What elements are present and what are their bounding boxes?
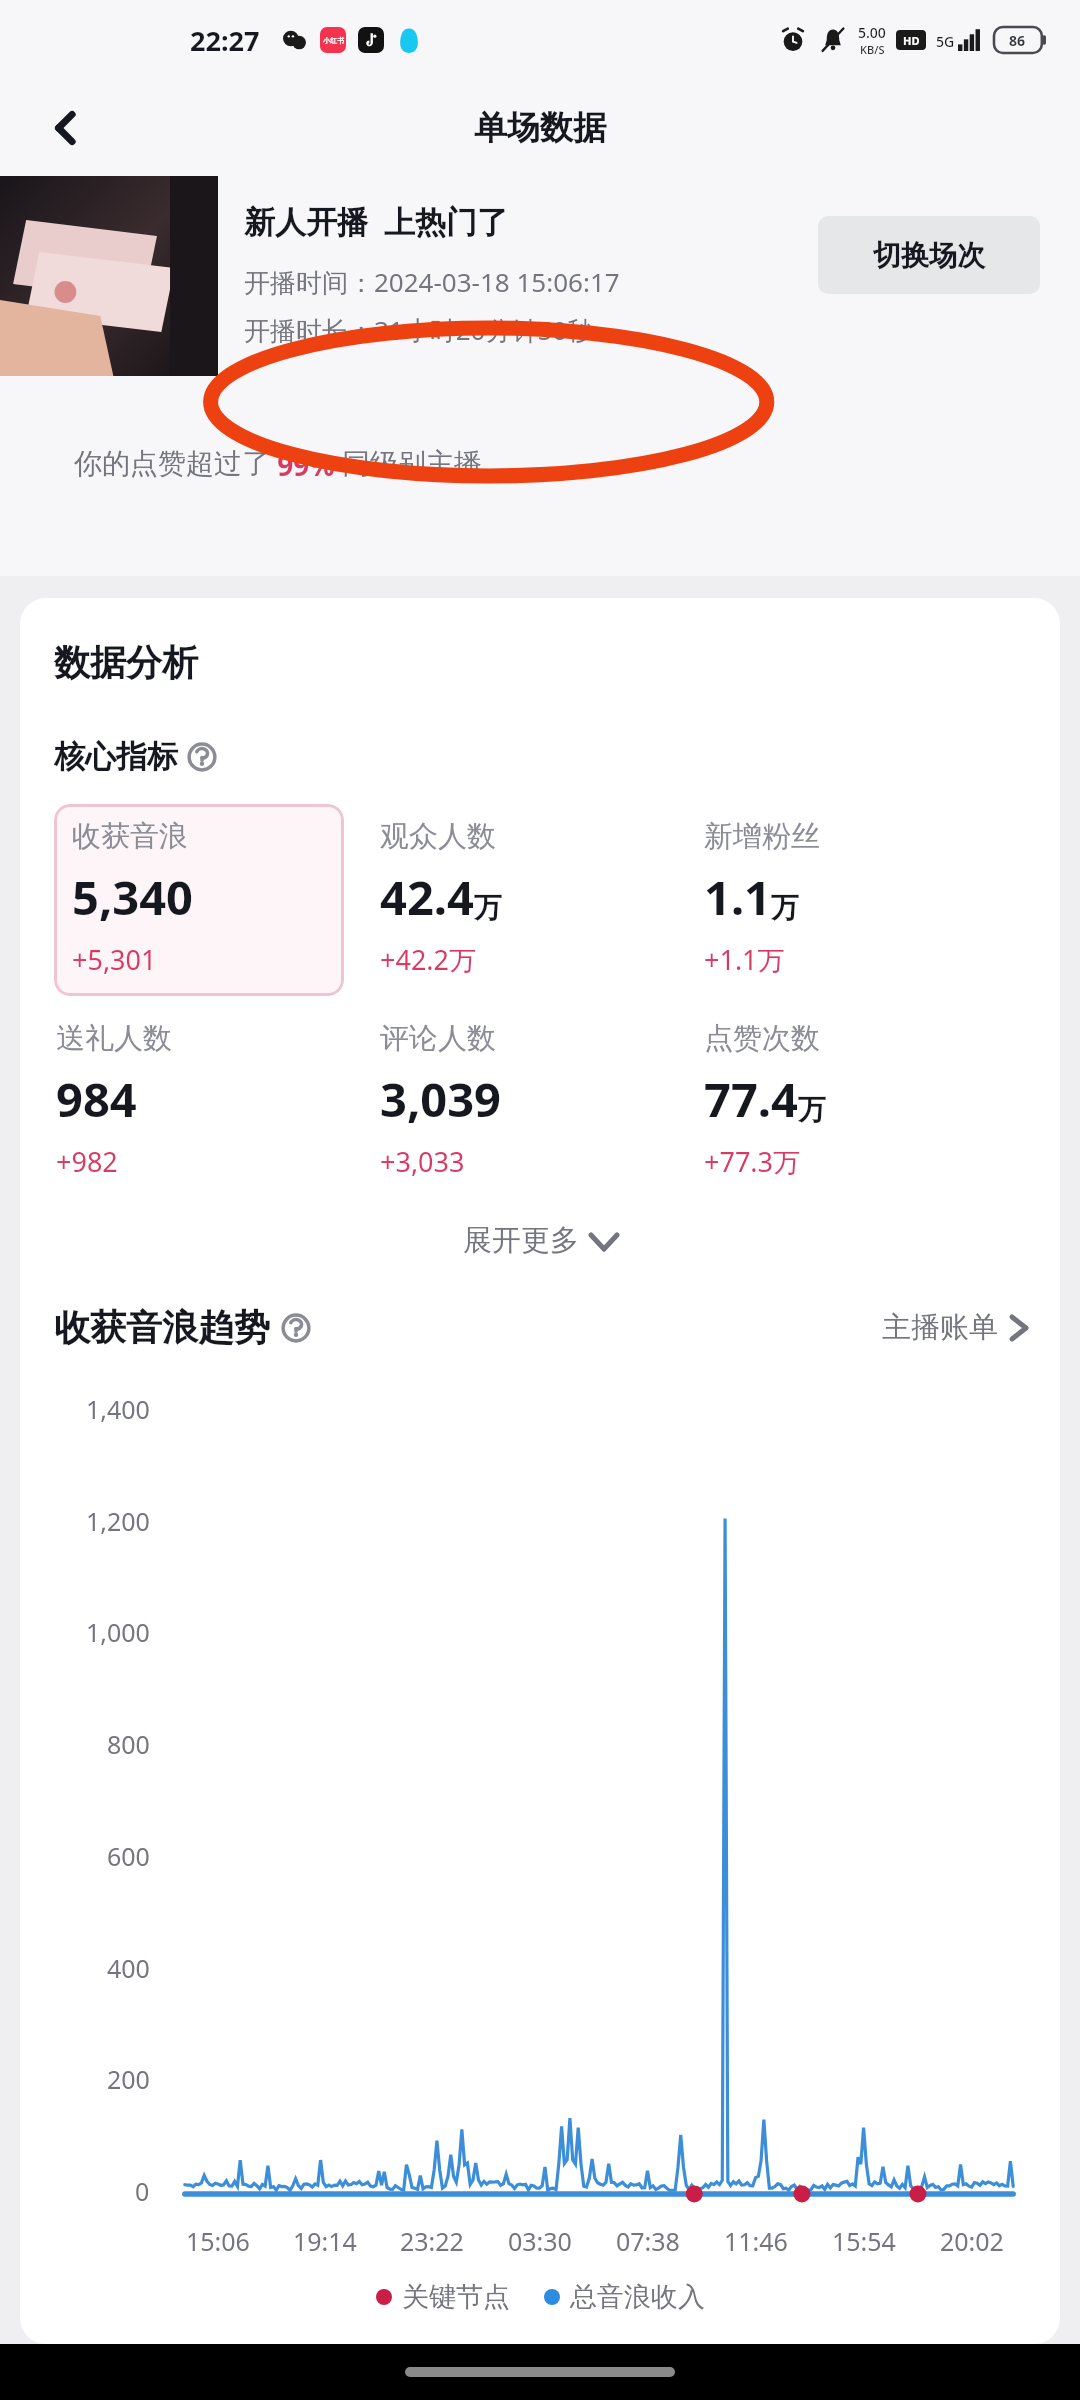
button[interactable]: 评论人数 bbox=[378, 1006, 702, 1198]
staticText: 42.4 bbox=[380, 865, 474, 929]
staticText: +3,033 bbox=[380, 1143, 465, 1180]
staticText: 07:38 bbox=[616, 2224, 680, 2258]
staticText: 万 bbox=[771, 890, 799, 925]
staticText: 3,039 bbox=[380, 1067, 501, 1131]
button[interactable]: 核心指标 bbox=[54, 737, 216, 776]
staticText: 99% bbox=[270, 446, 342, 484]
button[interactable]: 送礼人数 bbox=[54, 1006, 378, 1198]
staticText: 15:54 bbox=[832, 2224, 896, 2258]
staticText: 1.1 bbox=[704, 865, 771, 929]
staticText: 800 bbox=[107, 1727, 150, 1761]
button[interactable]: 点赞次数 bbox=[702, 1006, 1026, 1198]
staticText: KB/S bbox=[860, 42, 885, 57]
button[interactable]: Live replay thumbnail bbox=[0, 176, 218, 376]
staticText: 单场数据 bbox=[474, 107, 606, 149]
staticText: +5,301 bbox=[72, 941, 157, 978]
staticText: 收获音浪 bbox=[72, 818, 188, 855]
staticText: 200 bbox=[107, 2062, 150, 2096]
staticText: 小红书 bbox=[323, 36, 344, 45]
staticText: 万 bbox=[474, 890, 502, 925]
button[interactable]: 展开更多 bbox=[443, 1212, 637, 1269]
button[interactable]: 主播账单 bbox=[882, 1309, 1026, 1346]
staticText: 核心指标 bbox=[54, 737, 178, 776]
staticText: 5G bbox=[936, 32, 955, 51]
staticText: 19:14 bbox=[293, 2224, 357, 2258]
staticText: 主播账单 bbox=[882, 1309, 998, 1346]
staticText: 03:30 bbox=[508, 2224, 572, 2258]
staticText: +982 bbox=[56, 1143, 118, 1180]
staticText: 77.4 bbox=[704, 1067, 798, 1131]
staticText: HD bbox=[903, 33, 920, 48]
staticText: 15:06 bbox=[186, 2224, 250, 2258]
staticText: 1,000 bbox=[86, 1615, 150, 1649]
staticText: +1.1万 bbox=[704, 941, 785, 978]
staticText: 总音浪收入 bbox=[570, 2280, 705, 2314]
staticText: 开播时间：2024-03-18 15:06:17 bbox=[244, 264, 620, 300]
staticText: 万 bbox=[798, 1092, 826, 1127]
button[interactable]: 新增粉丝 bbox=[702, 804, 1026, 996]
staticText: 984 bbox=[56, 1067, 137, 1131]
button[interactable]: Back bbox=[30, 92, 102, 164]
staticText: 展开更多 bbox=[463, 1222, 579, 1259]
staticText: 同级别主播 bbox=[342, 446, 482, 481]
staticText: 开播时长：31小时20分钟50秒 bbox=[244, 312, 594, 348]
staticText: 0 bbox=[135, 2174, 150, 2208]
staticText: 收获音浪趋势 bbox=[54, 1305, 270, 1350]
staticText: 5,340 bbox=[72, 865, 193, 929]
staticText: 11:46 bbox=[724, 2224, 788, 2258]
staticText: 22:27 bbox=[190, 22, 260, 59]
staticText: 1,200 bbox=[86, 1504, 150, 1538]
staticText: 600 bbox=[107, 1839, 150, 1873]
staticText: +77.3万 bbox=[704, 1143, 801, 1180]
button[interactable]: 收获音浪 bbox=[54, 804, 378, 996]
staticText: 切换场次 bbox=[873, 238, 985, 273]
staticText: 关键节点 bbox=[402, 2280, 510, 2314]
staticText: 你的点赞超过了 bbox=[74, 446, 270, 481]
staticText: 新人开播 上热门了 bbox=[244, 200, 509, 242]
staticText: 1,400 bbox=[86, 1392, 150, 1426]
staticText: 5.00 bbox=[858, 23, 886, 42]
staticText: 点赞次数 bbox=[704, 1020, 820, 1057]
staticText: 20:02 bbox=[940, 2224, 1004, 2258]
staticText: 86 bbox=[1009, 31, 1026, 50]
staticText: 观众人数 bbox=[380, 818, 496, 855]
button[interactable]: 切换场次 bbox=[818, 216, 1040, 294]
staticText: 送礼人数 bbox=[56, 1020, 172, 1057]
button[interactable]: 观众人数 bbox=[378, 804, 702, 996]
staticText: 23:22 bbox=[400, 2224, 464, 2258]
staticText: 评论人数 bbox=[380, 1020, 496, 1057]
staticText: 400 bbox=[107, 1951, 150, 1985]
staticText: 数据分析 bbox=[54, 640, 198, 685]
staticText: 新增粉丝 bbox=[704, 818, 820, 855]
staticText: +42.2万 bbox=[380, 941, 477, 978]
button[interactable]: 收获音浪趋势 bbox=[54, 1305, 310, 1350]
